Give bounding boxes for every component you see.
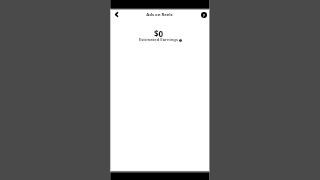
- staticText: Estimated Earnings: [139, 37, 178, 43]
- staticText: $0: [154, 28, 164, 37]
- staticText: ?: [203, 13, 205, 18]
- staticText: Ads on Reels: [146, 12, 173, 18]
- button[interactable]: Help: [196, 8, 210, 22]
- button[interactable]: Estimated Earnings: [139, 37, 182, 43]
- button[interactable]: Back: [110, 9, 123, 22]
